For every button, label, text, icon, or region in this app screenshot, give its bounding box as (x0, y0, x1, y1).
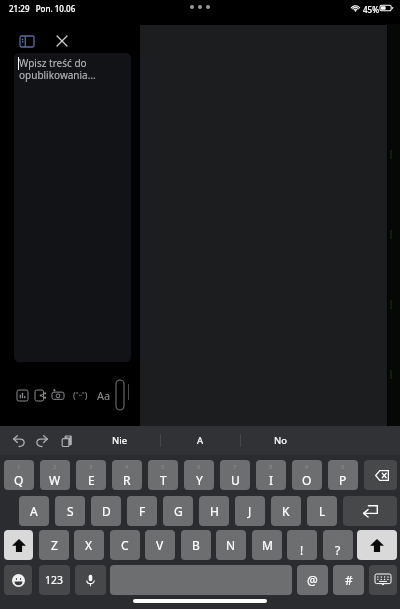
staticText: A (30, 503, 38, 519)
button[interactable]: Publish (116, 380, 124, 410)
staticText: R (123, 472, 131, 488)
button[interactable]: Redo (32, 426, 52, 455)
staticText: 7 (233, 463, 237, 471)
button[interactable]: 8 (256, 460, 286, 490)
staticText: 3 (89, 463, 93, 471)
button[interactable]: S (55, 496, 85, 526)
button[interactable]: 6 (184, 460, 214, 490)
staticText: , (301, 533, 303, 541)
staticText: C (121, 537, 129, 553)
staticText: E (88, 472, 95, 488)
staticText: N (226, 537, 236, 553)
button[interactable]: H (199, 496, 229, 526)
button[interactable]: Poll (17, 390, 28, 401)
staticText: U (231, 472, 240, 488)
button[interactable]: 5 (148, 460, 178, 490)
button[interactable]: 0 (328, 460, 358, 490)
staticText: 2 (53, 463, 57, 471)
staticText: G (174, 503, 183, 519)
button[interactable]: A (19, 496, 49, 526)
staticText: F (139, 503, 146, 519)
button[interactable]: Z (39, 530, 69, 560)
button[interactable]: , (287, 530, 317, 560)
staticText: I (269, 472, 274, 488)
staticText: Y (196, 472, 203, 488)
staticText: Q (14, 472, 24, 488)
button[interactable]: 9 (292, 460, 322, 490)
button[interactable]: Keyboard settings (369, 565, 397, 595)
button[interactable]: Toggle sidebar (13, 27, 41, 55)
button[interactable]: K (271, 496, 301, 526)
staticText: 0 (341, 463, 345, 471)
button[interactable]: C (110, 530, 140, 560)
staticText: M (262, 537, 273, 553)
button[interactable]: G (163, 496, 193, 526)
button[interactable]: No (240, 426, 320, 455)
button[interactable]: Nie (80, 426, 160, 455)
staticText: 5 (161, 463, 165, 471)
staticText: B (192, 537, 200, 553)
staticText: No (274, 434, 287, 447)
staticText: A (197, 434, 204, 447)
staticText: 123 (45, 573, 64, 587)
button[interactable]: 3 (76, 460, 106, 490)
button[interactable]: # (333, 565, 364, 595)
button[interactable]: (˚ᵕ˚) (68, 387, 92, 403)
button[interactable]: X (74, 530, 104, 560)
button[interactable]: Emoji (4, 565, 32, 595)
button[interactable]: Aa (96, 387, 111, 403)
button[interactable]: Numbers (39, 565, 70, 595)
button[interactable]: N (216, 530, 246, 560)
button[interactable]: Close (48, 27, 76, 55)
staticText: 45% (363, 4, 379, 15)
button[interactable]: Backspace (364, 460, 397, 490)
button[interactable]: 4 (112, 460, 142, 490)
button[interactable]: 1 (4, 460, 34, 490)
button[interactable]: B (181, 530, 211, 560)
button[interactable]: A (160, 426, 240, 455)
staticText: 6 (197, 463, 201, 471)
staticText: Z (51, 537, 58, 553)
button[interactable]: Wpisz treść do opublikowania... (14, 53, 131, 362)
staticText: D (102, 503, 111, 519)
button[interactable]: F (127, 496, 157, 526)
staticText: Aa (97, 388, 111, 403)
staticText: Wpisz treść do opublikowania... (19, 56, 123, 82)
staticText: 9 (305, 463, 309, 471)
button[interactable]: D (91, 496, 121, 526)
button[interactable]: L (307, 496, 337, 526)
staticText: @ (307, 572, 318, 588)
button[interactable]: Shift (357, 530, 397, 560)
button[interactable]: 2 (40, 460, 70, 490)
button[interactable]: Camera (52, 389, 64, 401)
staticText: X (85, 537, 93, 553)
button[interactable]: @ (297, 565, 328, 595)
staticText: 4 (125, 463, 129, 471)
staticText: Nie (112, 434, 128, 447)
staticText: 8 (269, 463, 273, 471)
button[interactable]: Voice input (75, 565, 106, 595)
button[interactable]: . (323, 530, 353, 560)
staticText: # (345, 572, 353, 588)
staticText: K (282, 503, 290, 519)
button[interactable]: Paste (57, 426, 77, 455)
staticText: L (319, 503, 326, 519)
staticText: T (160, 472, 167, 488)
button[interactable]: Shift (4, 530, 33, 560)
button[interactable]: 7 (220, 460, 250, 490)
staticText: J (248, 503, 252, 519)
staticText: (˚ᵕ˚) (73, 389, 88, 401)
staticText: S (67, 503, 74, 519)
button[interactable]: V (145, 530, 175, 560)
staticText: H (210, 503, 219, 519)
button[interactable]: Undo (9, 426, 29, 455)
button[interactable]: J (235, 496, 265, 526)
button[interactable]: Enter (343, 496, 397, 526)
staticText: W (49, 472, 61, 488)
staticText: ? (335, 542, 341, 558)
button[interactable]: M (252, 530, 282, 560)
button[interactable]: GIF (35, 390, 46, 401)
staticText: ! (300, 542, 304, 558)
